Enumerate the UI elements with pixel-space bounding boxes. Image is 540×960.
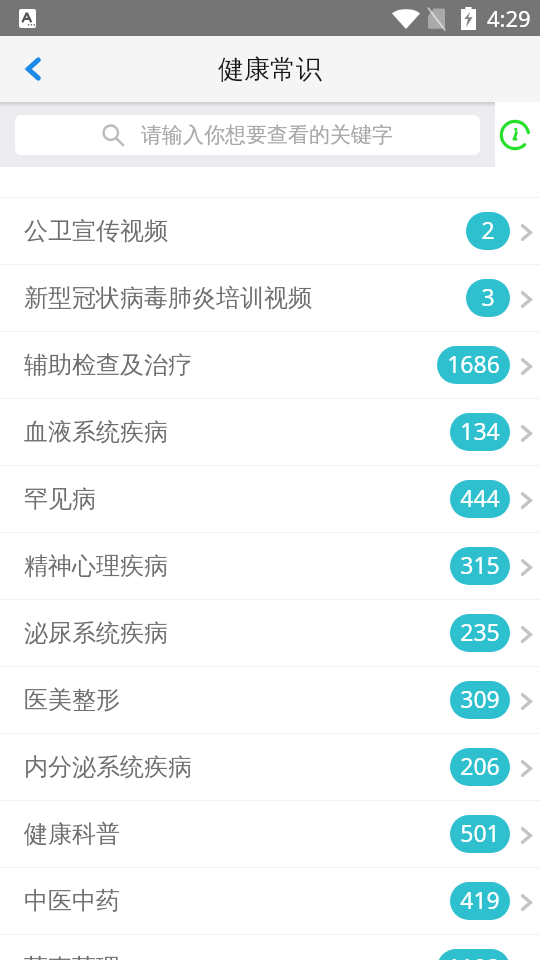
staticText: 4:29	[487, 3, 531, 33]
staticText: 3	[481, 281, 495, 312]
staticText: 内分泌系统疾病	[24, 752, 450, 782]
button[interactable]: 精神心理疾病	[0, 533, 540, 599]
button[interactable]: 辅助检查及治疗	[0, 332, 540, 398]
staticText: 罕见病	[24, 484, 450, 514]
staticText: 315	[460, 549, 500, 580]
button[interactable]: 泌尿系统疾病	[0, 600, 540, 666]
button[interactable]: 药事药理	[0, 935, 540, 960]
staticText: 1102	[447, 951, 500, 960]
staticText: 444	[460, 482, 500, 513]
staticText: 419	[460, 884, 500, 915]
staticText: 泌尿系统疾病	[24, 618, 450, 648]
button[interactable]: 血液系统疾病	[0, 399, 540, 465]
staticText: 健康科普	[24, 819, 450, 849]
button[interactable]: 内分泌系统疾病	[0, 734, 540, 800]
staticText: 中医中药	[24, 886, 450, 916]
staticText: 药事药理	[24, 953, 437, 960]
staticText: 2	[481, 214, 495, 245]
button[interactable]: Back	[10, 45, 58, 93]
staticText: 精神心理疾病	[24, 551, 450, 581]
staticText: 1686	[447, 348, 500, 379]
button[interactable]: 新型冠状病毒肺炎培训视频	[0, 265, 540, 331]
staticText: 235	[460, 616, 500, 647]
staticText: 辅助检查及治疗	[24, 350, 437, 380]
button[interactable]: Info	[495, 102, 540, 167]
button[interactable]: 中医中药	[0, 868, 540, 934]
staticText: 206	[460, 750, 500, 781]
staticText: 501	[460, 817, 500, 848]
staticText: 309	[460, 683, 500, 714]
button[interactable]: 公卫宣传视频	[0, 198, 540, 264]
staticText: 请输入你想要查看的关键字	[141, 122, 393, 148]
staticText: 医美整形	[24, 685, 450, 715]
staticText: 新型冠状病毒肺炎培训视频	[24, 283, 466, 313]
button[interactable]: 医美整形	[0, 667, 540, 733]
button[interactable]: 罕见病	[0, 466, 540, 532]
staticText: 健康常识	[218, 53, 322, 86]
staticText: 134	[460, 415, 500, 446]
staticText: 公卫宣传视频	[24, 216, 466, 246]
button[interactable]: 健康科普	[0, 801, 540, 867]
staticText: 血液系统疾病	[24, 417, 450, 447]
button[interactable]: 请输入你想要查看的关键字	[15, 115, 480, 155]
